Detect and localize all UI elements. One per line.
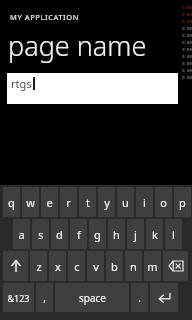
staticText: l xyxy=(172,227,175,242)
staticText: v xyxy=(93,259,99,274)
staticText: m xyxy=(147,259,158,274)
button[interactable]: u xyxy=(117,187,134,217)
button[interactable]: x xyxy=(49,251,66,281)
button[interactable]: t xyxy=(79,187,96,217)
button[interactable]: Backspace xyxy=(163,251,188,281)
staticText: 0.00 xyxy=(182,47,192,52)
staticText: t xyxy=(86,195,90,210)
button[interactable]: z xyxy=(30,251,47,281)
button[interactable]: v xyxy=(87,251,104,281)
staticText: w xyxy=(26,195,35,210)
button[interactable]: o xyxy=(155,187,172,217)
staticText: 0.00 xyxy=(182,54,192,59)
staticText: 0.00 xyxy=(182,12,192,17)
staticText: o xyxy=(160,195,167,210)
button[interactable]: n xyxy=(125,251,142,281)
staticText: 0.00 xyxy=(182,75,192,80)
button[interactable]: , xyxy=(36,283,53,312)
staticText: 0.00 xyxy=(182,19,192,24)
button[interactable]: &123 xyxy=(3,283,34,312)
staticText: a xyxy=(18,227,25,242)
staticText: i xyxy=(143,195,146,210)
staticText: e xyxy=(46,195,53,210)
button[interactable]: g xyxy=(89,219,106,249)
button[interactable]: c xyxy=(68,251,85,281)
staticText: c xyxy=(74,259,80,274)
staticText: page name xyxy=(8,27,147,64)
staticText: 0.00 xyxy=(182,40,192,45)
staticText: space xyxy=(79,291,106,305)
staticText: y xyxy=(104,195,110,210)
button[interactable]: . xyxy=(131,283,148,312)
staticText: rtgs xyxy=(11,76,32,91)
button[interactable]: rtgs xyxy=(7,73,178,104)
staticText: r xyxy=(66,195,71,210)
button[interactable]: p xyxy=(174,187,191,217)
button[interactable]: Enter xyxy=(150,283,178,312)
staticText: 0.00 xyxy=(182,61,192,66)
staticText: j xyxy=(134,227,137,242)
staticText: 0.00 xyxy=(182,33,192,38)
button[interactable]: w xyxy=(22,187,39,217)
button[interactable]: h xyxy=(108,219,125,249)
staticText: b xyxy=(111,259,118,274)
staticText: x xyxy=(55,259,61,274)
staticText: MY APPLICATION xyxy=(10,12,80,22)
button[interactable]: j xyxy=(127,219,144,249)
button[interactable]: a xyxy=(13,219,30,249)
staticText: f xyxy=(77,227,81,242)
staticText: n xyxy=(130,259,137,274)
staticText: q xyxy=(8,195,15,210)
button[interactable]: space xyxy=(55,283,129,312)
button[interactable]: b xyxy=(106,251,123,281)
staticText: &123 xyxy=(7,292,30,304)
staticText: s xyxy=(38,227,44,242)
staticText: z xyxy=(36,259,42,274)
staticText: d xyxy=(56,227,63,242)
staticText: g xyxy=(94,227,101,242)
staticText: k xyxy=(152,227,158,242)
staticText: p xyxy=(179,195,186,210)
button[interactable]: l xyxy=(165,219,182,249)
button[interactable]: f xyxy=(70,219,87,249)
button[interactable]: Shift xyxy=(3,251,28,281)
button[interactable]: d xyxy=(51,219,68,249)
staticText: u xyxy=(122,195,129,210)
staticText: 0.00 xyxy=(182,26,192,31)
staticText: h xyxy=(113,227,120,242)
button[interactable]: q xyxy=(3,187,20,217)
staticText: 0.00 xyxy=(182,5,192,10)
staticText: 0.00 xyxy=(182,68,192,73)
button[interactable]: m xyxy=(144,251,161,281)
button[interactable]: k xyxy=(146,219,163,249)
button[interactable]: i xyxy=(136,187,153,217)
button[interactable]: y xyxy=(98,187,115,217)
button[interactable]: s xyxy=(32,219,49,249)
staticText: , xyxy=(43,291,46,305)
button[interactable]: e xyxy=(41,187,58,217)
button[interactable]: r xyxy=(60,187,77,217)
staticText: . xyxy=(138,291,141,305)
